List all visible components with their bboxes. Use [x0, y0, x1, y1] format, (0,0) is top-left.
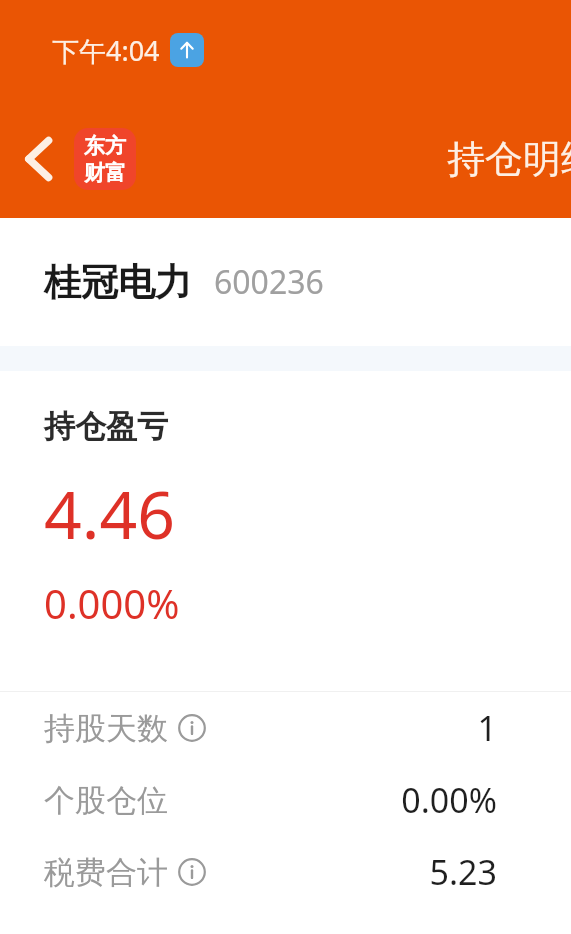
- button[interactable]: 桂冠电力: [0, 218, 571, 346]
- staticText: 0.00%: [401, 777, 497, 823]
- staticText: 下午4:04: [52, 32, 160, 69]
- staticText: 4.46: [44, 468, 175, 558]
- button[interactable]: 个股仓位: [0, 764, 571, 836]
- staticText: 600236: [214, 260, 324, 304]
- staticText: 0.000%: [44, 576, 180, 630]
- staticText: 1: [477, 705, 497, 751]
- staticText: 税费合计: [44, 853, 168, 892]
- button[interactable]: 持仓盈亏: [0, 371, 571, 691]
- staticText: 财富: [84, 160, 126, 186]
- staticText: 桂冠电力: [44, 259, 192, 306]
- staticText: 持股天数: [44, 709, 168, 748]
- staticText: 持仓盈亏: [44, 407, 168, 446]
- button[interactable]: 东方财富: [74, 128, 136, 190]
- staticText: 东方: [84, 133, 126, 159]
- staticText: 持仓明细: [447, 135, 571, 183]
- button[interactable]: 税费合计: [0, 836, 571, 908]
- staticText: 个股仓位: [44, 781, 168, 820]
- staticText: 5.23: [429, 849, 497, 895]
- button[interactable]: Back: [8, 128, 70, 190]
- button[interactable]: 持股天数: [0, 692, 571, 764]
